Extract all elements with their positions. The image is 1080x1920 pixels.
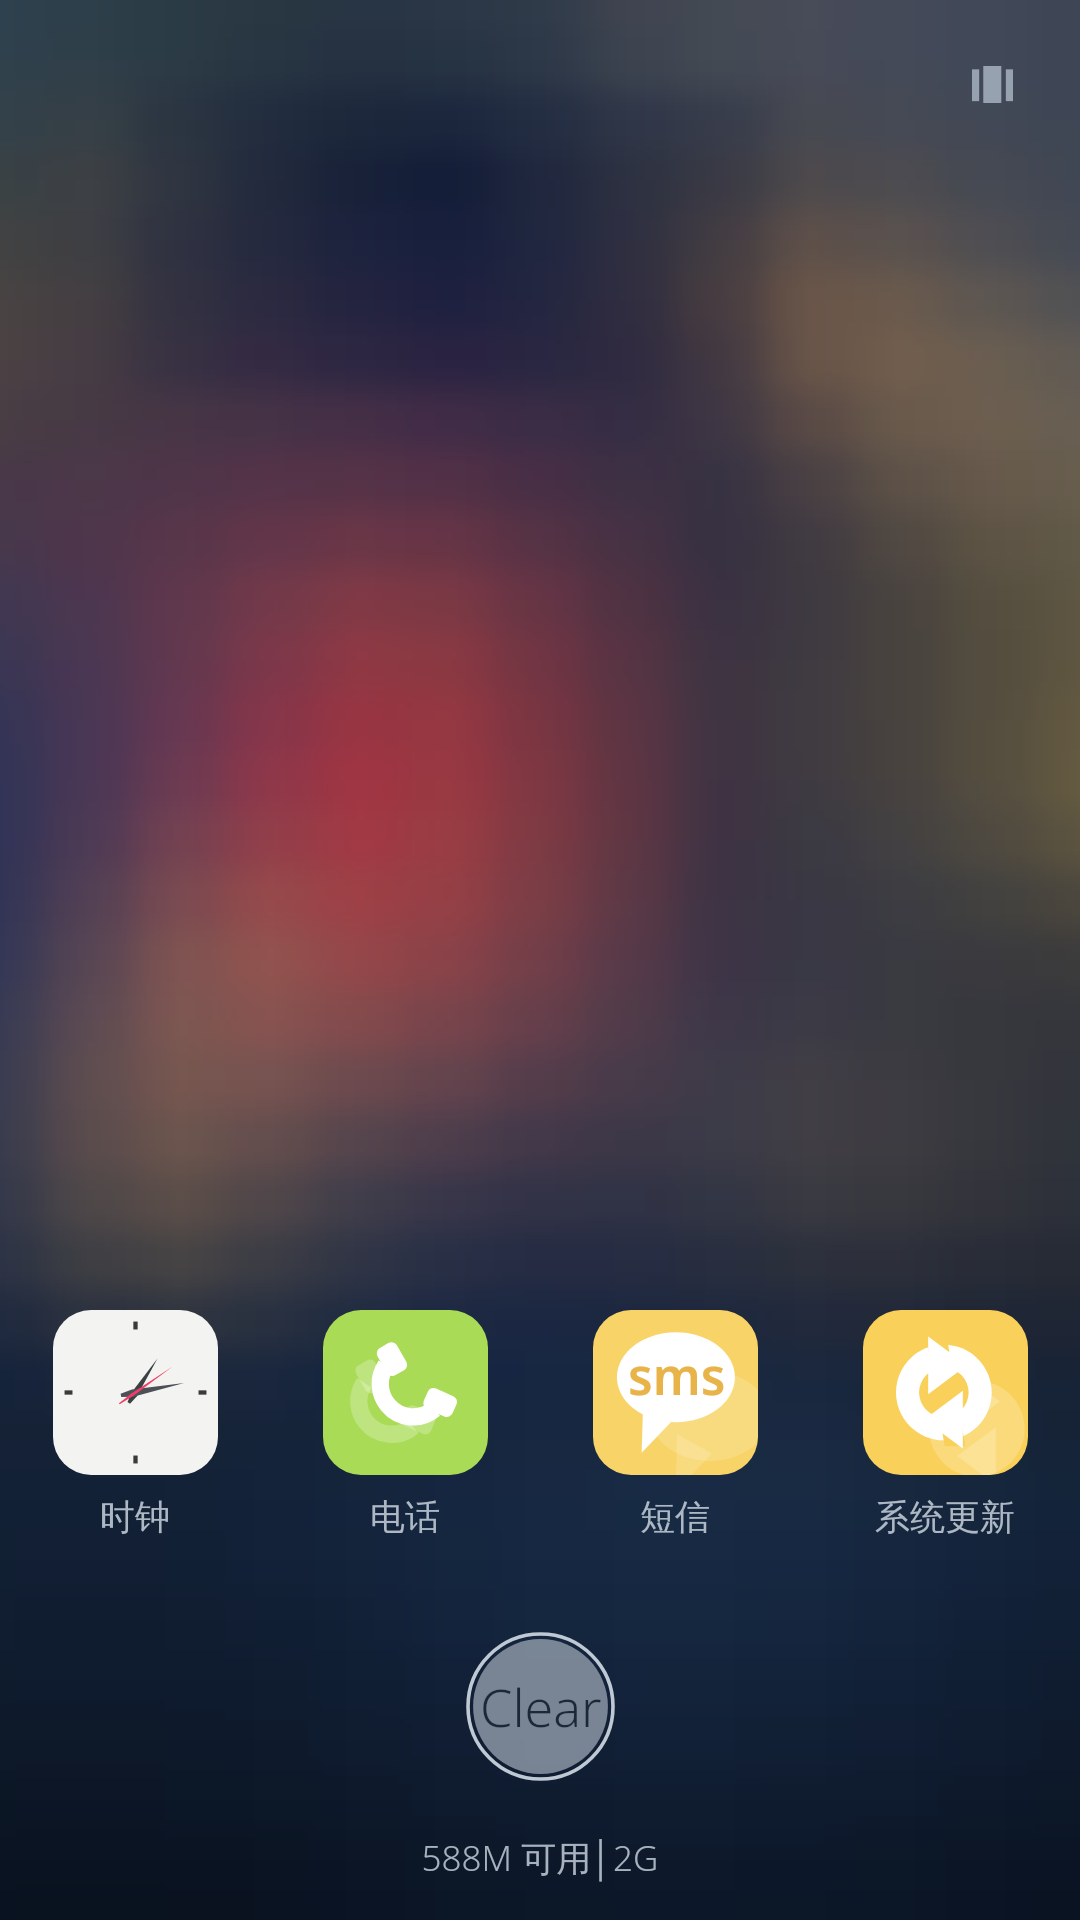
button[interactable]: Clear [466, 1632, 615, 1781]
staticText: 电话 [370, 1495, 440, 1539]
button[interactable]: 电话 [270, 1310, 540, 1539]
staticText: sms [628, 1342, 726, 1410]
button[interactable]: sms [540, 1310, 810, 1539]
staticText: 系统更新 [875, 1495, 1015, 1539]
button[interactable]: Switch task view [956, 48, 1028, 120]
staticText: 588M 可用│2G [0, 1834, 1080, 1882]
button[interactable]: 系统更新 [810, 1310, 1080, 1539]
staticText: Clear [480, 1671, 602, 1742]
staticText: 短信 [640, 1495, 710, 1539]
button[interactable]: 时钟 [0, 1310, 270, 1539]
staticText: 时钟 [100, 1495, 170, 1539]
